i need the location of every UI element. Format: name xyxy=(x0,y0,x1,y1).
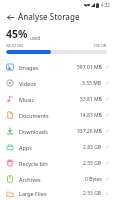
staticText: 45% xyxy=(6,27,28,41)
button[interactable]: Recycle bin xyxy=(0,155,113,171)
staticText: Apps xyxy=(19,144,32,151)
staticText: Documents xyxy=(19,112,49,119)
button[interactable]: Apps xyxy=(0,139,113,155)
staticText: 128 GB xyxy=(93,43,107,48)
staticText: 58.37 GB xyxy=(6,43,23,48)
button[interactable]: Videos xyxy=(0,75,113,91)
staticText: 597.01 MB xyxy=(77,64,102,71)
button[interactable]: Downloads xyxy=(0,123,113,139)
staticText: Analyse Storage xyxy=(18,11,80,22)
staticText: Videos xyxy=(19,80,37,87)
button[interactable]: Documents xyxy=(0,107,113,123)
staticText: 14.83 MB xyxy=(80,112,102,119)
staticText: 4:32 xyxy=(101,2,110,8)
staticText: Archives xyxy=(19,176,41,183)
staticText: 2.55 GB xyxy=(83,160,102,167)
staticText: 337.26 MB xyxy=(77,128,102,135)
staticText: 2.83 GB xyxy=(83,144,102,151)
staticText: 2.55 GB xyxy=(83,190,102,197)
button[interactable]: Archives xyxy=(0,171,113,187)
button[interactable]: Large Files xyxy=(0,187,113,200)
staticText: 0 Bytes xyxy=(85,176,102,183)
staticText: Large Files xyxy=(19,190,47,197)
button[interactable]: Music xyxy=(0,91,113,107)
button[interactable]: Back xyxy=(4,11,16,23)
staticText: used xyxy=(30,35,41,41)
button[interactable]: Images xyxy=(0,59,113,75)
staticText: 3.55 MB xyxy=(82,80,102,87)
staticText: 53.81 MB xyxy=(80,96,102,103)
staticText: Images xyxy=(19,64,39,71)
staticText: Recycle bin xyxy=(19,160,48,167)
staticText: Downloads xyxy=(19,128,48,135)
staticText: Music xyxy=(19,96,35,103)
